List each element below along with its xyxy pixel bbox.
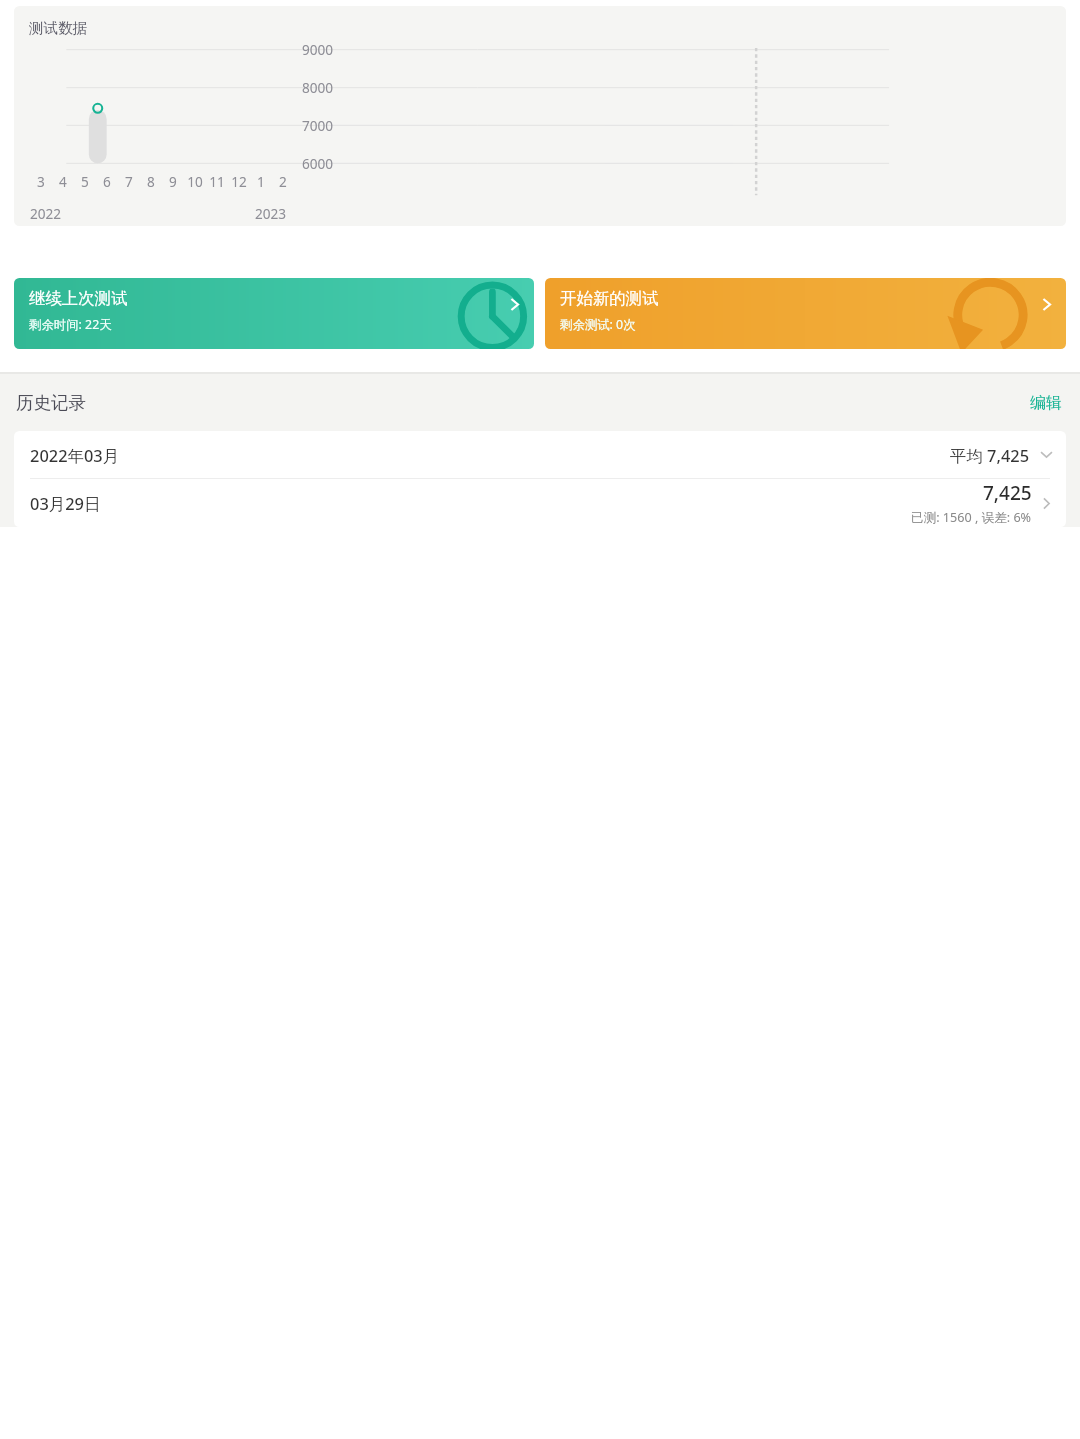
staticText: 9000 [302,40,334,59]
staticText: 10 [185,172,205,191]
staticText: 2022 [30,204,62,223]
staticText: 7000 [302,116,334,135]
staticText: 已测: 1560 , 误差: 6% [911,509,1032,526]
staticText: 测试数据 [29,19,88,37]
staticText: 剩余时间: 22天 [29,316,112,333]
button[interactable]: 开始新的测试 [545,278,1066,349]
staticText: 03月29日 [30,492,101,514]
button[interactable]: 03月29日 [14,479,1066,527]
staticText: 7,425 [983,480,1032,506]
staticText: 4 [53,172,73,191]
staticText: 2023 [255,204,287,223]
staticText: 9 [163,172,183,191]
staticText: 5 [75,172,95,191]
staticText: 平均 7,425 [950,444,1030,466]
staticText: 8000 [302,78,334,97]
button[interactable]: 编辑 [1027,390,1065,416]
staticText: 3 [31,172,51,191]
staticText: 历史记录 [16,392,86,414]
other: 查看详情 [1040,497,1053,510]
staticText: 2022年03月 [30,444,120,466]
staticText: 6 [97,172,117,191]
staticText: 继续上次测试 [29,288,128,309]
staticText: 8 [141,172,161,191]
staticText: 6000 [302,154,334,173]
staticText: 11 [207,172,227,191]
staticText: 1 [251,172,271,191]
staticText: 剩余测试: 0次 [560,316,636,333]
staticText: 编辑 [1030,393,1062,413]
staticText: 7 [119,172,139,191]
button[interactable]: 2022年03月 [14,431,1066,478]
button[interactable]: 继续上次测试 [14,278,534,349]
staticText: 12 [229,172,249,191]
staticText: 2 [273,172,293,191]
staticText: 开始新的测试 [560,288,659,309]
